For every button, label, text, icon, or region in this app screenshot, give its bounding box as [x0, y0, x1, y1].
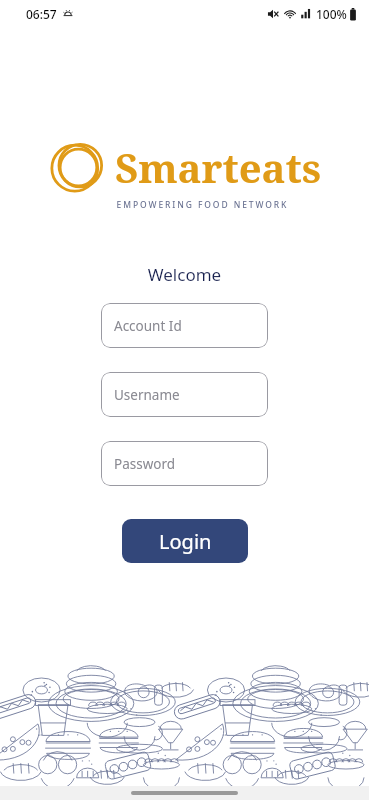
staticText: Account Id: [114, 317, 182, 335]
staticText: 100%: [316, 6, 347, 22]
staticText: Smarteats: [115, 140, 322, 194]
button[interactable]: Password: [101, 441, 268, 486]
staticText: 06:57: [26, 6, 57, 22]
button[interactable]: Account Id: [101, 303, 268, 348]
button[interactable]: Login: [122, 519, 248, 563]
staticText: EMPOWERING FOOD NETWORK: [72, 199, 333, 211]
staticText: Login: [159, 528, 212, 555]
staticText: Welcome: [0, 263, 369, 286]
staticText: Username: [114, 386, 180, 404]
button[interactable]: Username: [101, 372, 268, 417]
staticText: Password: [114, 455, 176, 473]
